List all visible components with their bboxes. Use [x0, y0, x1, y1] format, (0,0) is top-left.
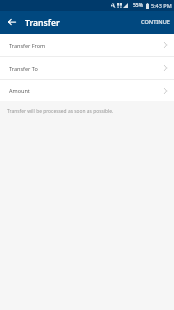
staticText: Transfer — [25, 17, 60, 29]
button[interactable]: Transfer To — [0, 57, 174, 79]
staticText: 55% — [133, 2, 143, 9]
staticText: 5:43 PM — [151, 2, 172, 9]
staticText: Transfer From — [9, 42, 46, 49]
staticText: Transfer will be processed as soon as po… — [7, 108, 114, 115]
staticText: CONTINUE — [141, 18, 170, 26]
button[interactable]: Back — [0, 11, 23, 34]
staticText: Transfer To — [9, 65, 38, 72]
button[interactable]: Transfer From — [0, 34, 174, 56]
staticText: Amount — [9, 87, 30, 94]
button[interactable]: CONTINUE — [135, 13, 174, 33]
button[interactable]: Amount — [0, 80, 174, 101]
